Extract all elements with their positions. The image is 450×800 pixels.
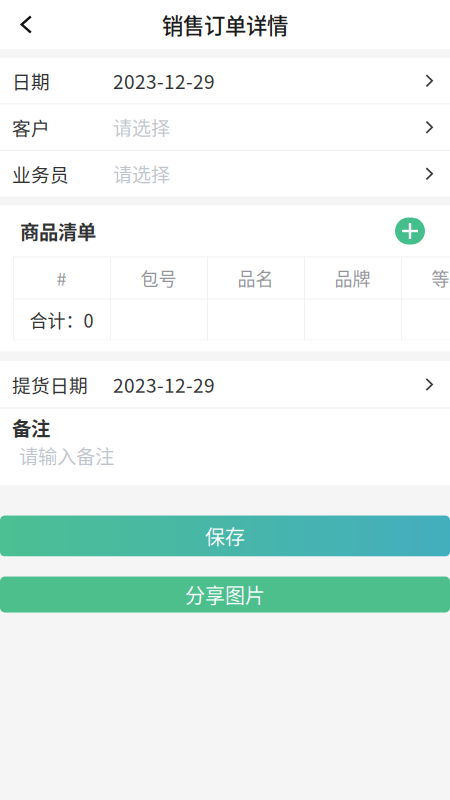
staticText: 备注 xyxy=(12,413,50,441)
button[interactable]: 业务员 xyxy=(0,151,450,196)
button[interactable]: 日期 xyxy=(0,58,450,103)
staticText: # xyxy=(56,265,66,291)
staticText: 品名 xyxy=(237,265,273,291)
staticText: 品牌 xyxy=(334,265,370,291)
staticText: 销售订单详情 xyxy=(162,9,288,40)
staticText: 等级 xyxy=(431,265,450,291)
staticText: 客户 xyxy=(12,114,50,141)
button[interactable]: 分享图片 xyxy=(0,576,450,612)
staticText: 商品清单 xyxy=(20,217,96,245)
button[interactable]: Add item xyxy=(389,210,431,252)
staticText: 包号 xyxy=(140,265,176,291)
staticText: 请输入备注 xyxy=(19,441,114,469)
staticText: 请选择 xyxy=(113,113,170,141)
button[interactable]: 保存 xyxy=(0,515,450,556)
staticText: 2023-12-29 xyxy=(113,67,215,94)
button[interactable]: 提货日期 xyxy=(0,361,450,407)
staticText: 请选择 xyxy=(113,160,170,187)
staticText: 提货日期 xyxy=(12,371,88,398)
staticText: 2023-12-29 xyxy=(113,371,215,398)
staticText: 业务员 xyxy=(12,160,69,187)
staticText: 日期 xyxy=(12,67,50,94)
staticText: 保存 xyxy=(205,521,245,550)
button[interactable]: Back xyxy=(0,0,46,49)
button[interactable]: 客户 xyxy=(0,104,450,150)
staticText: 合计：0 xyxy=(29,307,93,333)
staticText: 分享图片 xyxy=(185,580,265,609)
